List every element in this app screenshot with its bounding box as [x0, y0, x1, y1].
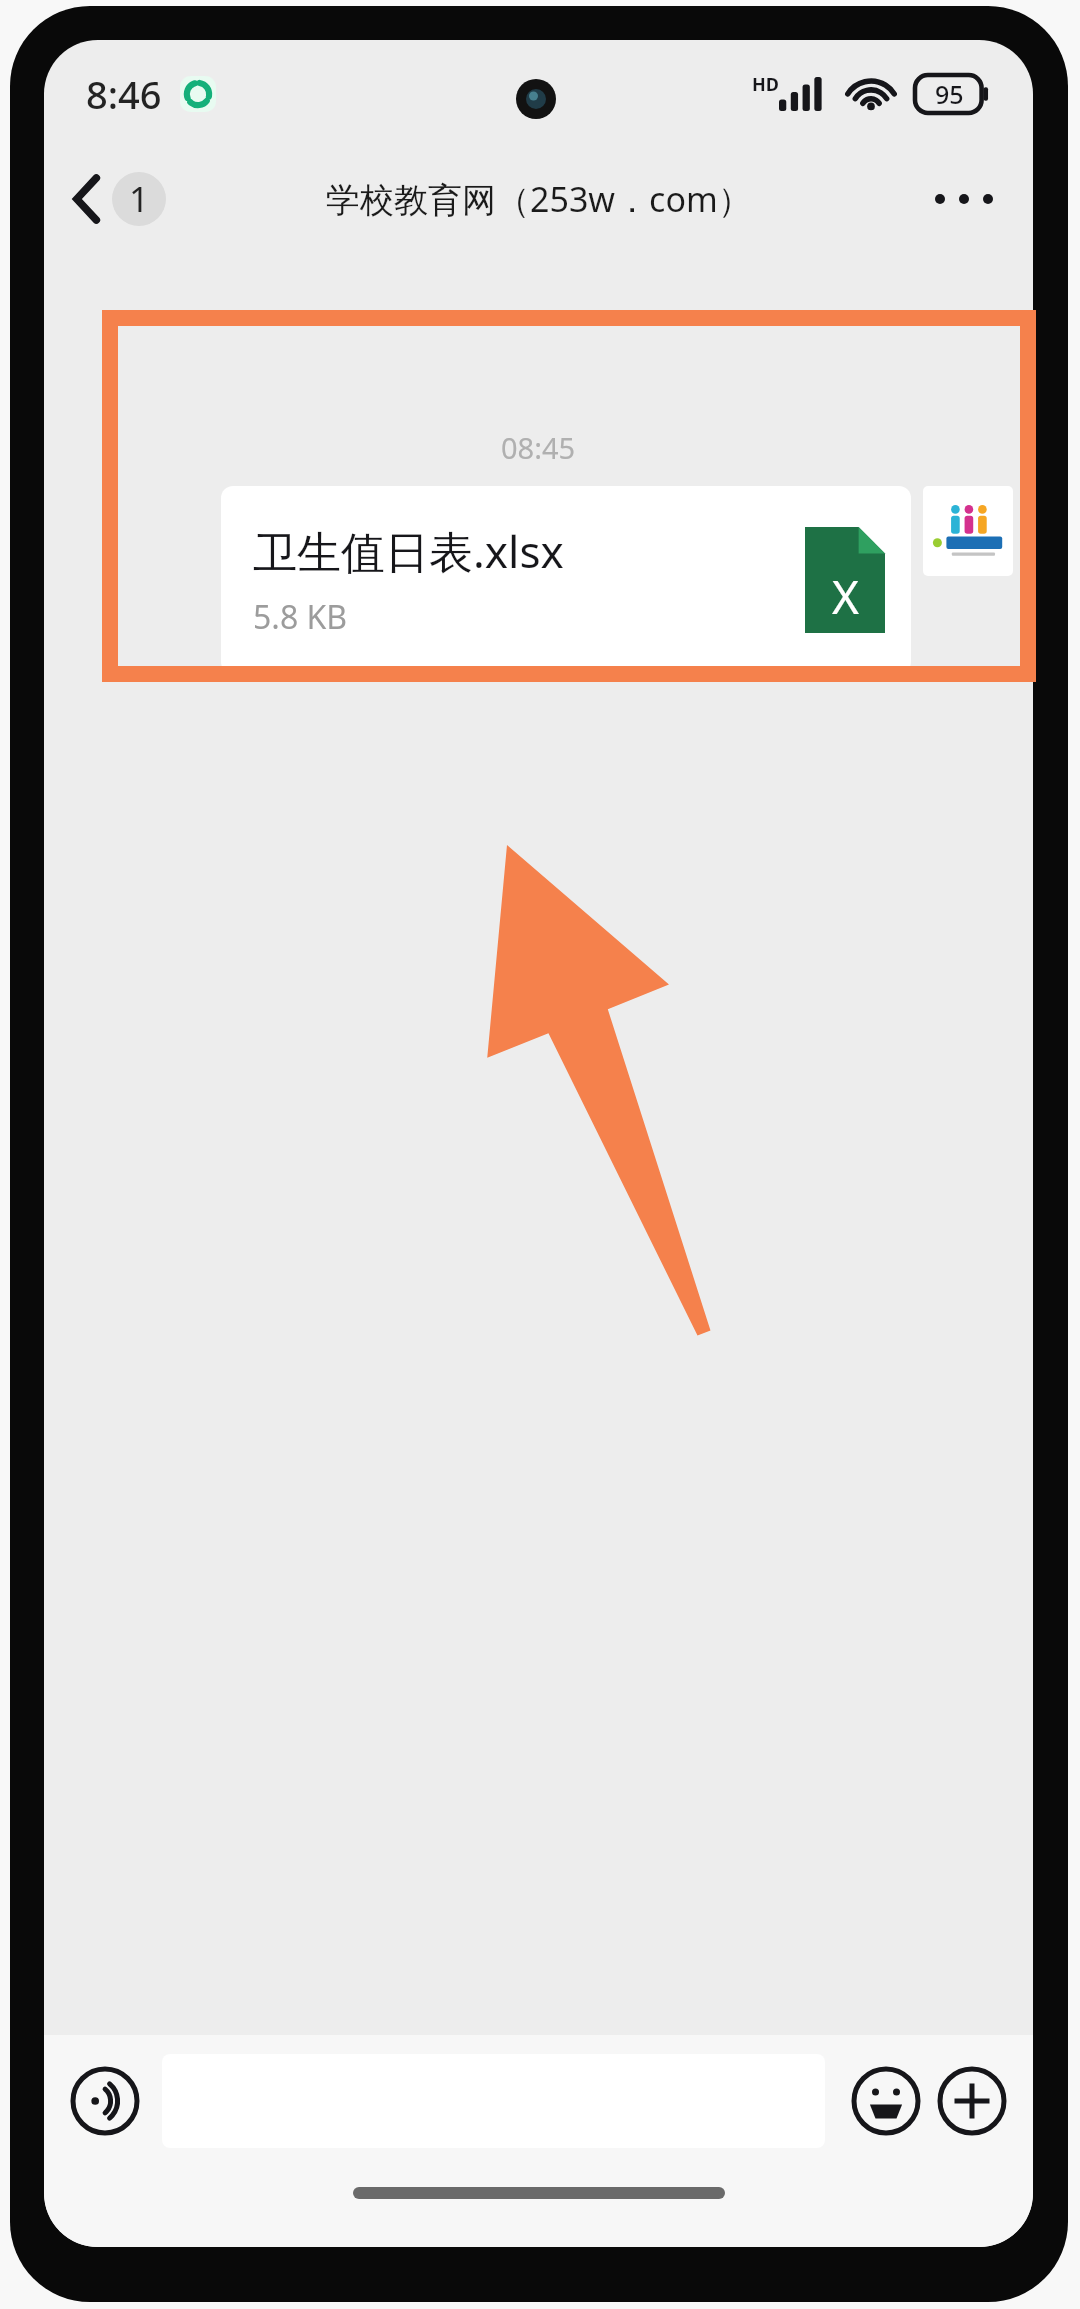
button[interactable]: 卫生值日表.xlsx — [221, 486, 911, 674]
button[interactable]: Contact avatar — [923, 486, 1013, 576]
staticText: 卫生值日表.xlsx — [253, 521, 564, 581]
staticText: 8:46 — [86, 68, 162, 120]
staticText: 1 — [129, 175, 150, 223]
button[interactable]: Voice message — [70, 2066, 140, 2136]
staticText: 5.8 KB — [253, 595, 348, 639]
staticText: X — [832, 565, 859, 628]
button[interactable]: More actions — [937, 2066, 1007, 2136]
button[interactable]: Emoji — [851, 2066, 921, 2136]
staticText: HD — [752, 72, 779, 97]
button[interactable]: More options — [921, 180, 1007, 218]
staticText: 08:45 — [501, 428, 576, 467]
staticText: 95 — [935, 77, 964, 111]
staticText: 学校教育网（253w．com） — [326, 176, 752, 222]
button[interactable]: Back, 1 unread — [62, 164, 178, 234]
